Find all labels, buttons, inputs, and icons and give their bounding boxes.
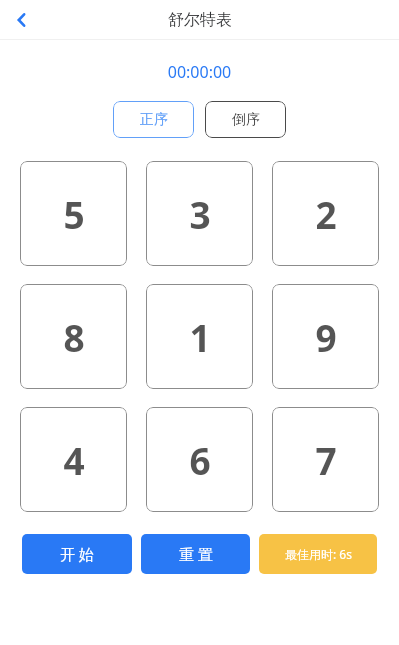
button[interactable]: 最佳用时: 6s — [259, 534, 377, 574]
button[interactable]: 重 置 — [141, 534, 250, 574]
staticText: 舒尔特表 — [168, 10, 232, 30]
staticText: 00:00:00 — [0, 61, 399, 83]
button[interactable]: 开 始 — [22, 534, 132, 574]
staticText: 6 — [189, 435, 211, 485]
button[interactable]: 3 — [146, 161, 253, 266]
button[interactable]: 1 — [146, 284, 253, 389]
button[interactable]: Back — [0, 0, 44, 40]
button[interactable]: 5 — [20, 161, 127, 266]
button[interactable]: 2 — [272, 161, 379, 266]
button[interactable]: 6 — [146, 407, 253, 512]
button[interactable]: 正序 — [113, 101, 194, 138]
staticText: 2 — [315, 189, 337, 239]
staticText: 3 — [189, 189, 211, 239]
staticText: 重 置 — [179, 544, 213, 564]
staticText: 7 — [315, 435, 337, 485]
staticText: 正序 — [140, 111, 168, 129]
staticText: 8 — [63, 312, 85, 362]
staticText: 4 — [63, 435, 85, 485]
button[interactable]: 8 — [20, 284, 127, 389]
staticText: 1 — [189, 312, 211, 362]
button[interactable]: 9 — [272, 284, 379, 389]
staticText: 最佳用时: 6s — [285, 546, 352, 562]
staticText: 开 始 — [60, 544, 94, 564]
button[interactable]: 倒序 — [205, 101, 286, 138]
staticText: 倒序 — [232, 111, 260, 129]
button[interactable]: 4 — [20, 407, 127, 512]
staticText: 9 — [315, 312, 337, 362]
button[interactable]: 7 — [272, 407, 379, 512]
staticText: 5 — [63, 189, 85, 239]
